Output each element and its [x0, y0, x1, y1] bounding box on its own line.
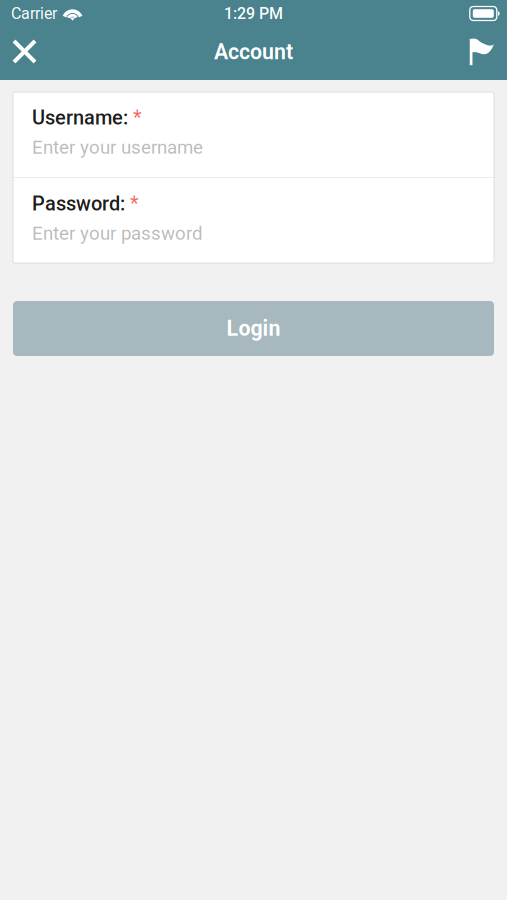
button[interactable]: Close: [0, 27, 49, 80]
button[interactable]: Flag: [458, 27, 507, 80]
staticText: Carrier: [11, 4, 57, 23]
staticText: Password:: [32, 192, 125, 215]
button[interactable]: Username:: [13, 92, 494, 177]
staticText: Account: [214, 39, 293, 64]
staticText: *: [130, 192, 139, 215]
staticText: Login: [226, 316, 280, 341]
staticText: Enter your password: [32, 222, 203, 244]
staticText: Username:: [32, 106, 128, 129]
button[interactable]: Login: [13, 301, 494, 356]
staticText: Enter your username: [32, 136, 203, 158]
button[interactable]: Password:: [13, 178, 494, 263]
staticText: 1:29 PM: [224, 4, 283, 23]
staticText: *: [133, 106, 142, 129]
